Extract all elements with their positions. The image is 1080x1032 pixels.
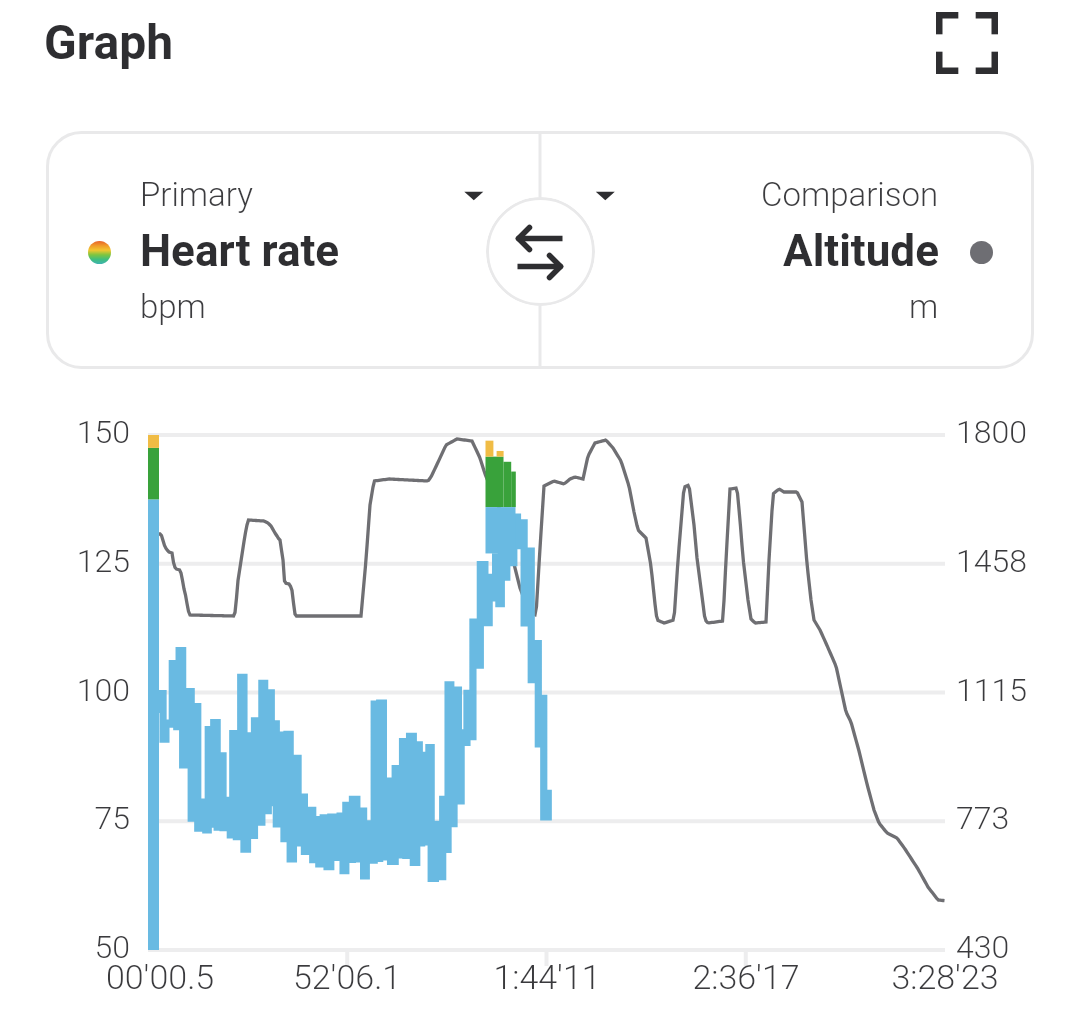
staticText: Altitude xyxy=(783,225,939,277)
staticText: Graph xyxy=(44,14,174,70)
button[interactable]: Graph xyxy=(44,14,174,70)
staticText: Heart rate xyxy=(140,225,340,277)
staticText: 150 xyxy=(10,413,130,451)
staticText: m xyxy=(909,287,939,326)
button[interactable]: Fullscreen xyxy=(924,0,1010,86)
button[interactable]: Comparison xyxy=(566,165,996,333)
staticText: 1:44'11 xyxy=(427,957,667,997)
button[interactable]: Swap primary and comparison xyxy=(486,197,595,306)
staticText: 1115 xyxy=(956,671,1027,709)
staticText: 50 xyxy=(10,928,130,966)
staticText: 125 xyxy=(10,542,130,580)
staticText: 2:36'17 xyxy=(626,957,866,997)
staticText: 1458 xyxy=(956,542,1027,580)
staticText: Comparison xyxy=(761,175,939,214)
staticText: Primary xyxy=(140,175,253,214)
staticText: bpm xyxy=(140,287,206,326)
staticText: 52'06.1 xyxy=(227,957,467,997)
staticText: 75 xyxy=(10,799,130,837)
staticText: 100 xyxy=(10,671,130,709)
staticText: 430 xyxy=(956,928,1010,966)
button[interactable]: Primary xyxy=(80,165,510,333)
staticText: 1800 xyxy=(956,413,1027,451)
staticText: 00'00.5 xyxy=(40,957,280,997)
staticText: 773 xyxy=(956,799,1010,837)
staticText: 3:28'23 xyxy=(825,957,1065,997)
